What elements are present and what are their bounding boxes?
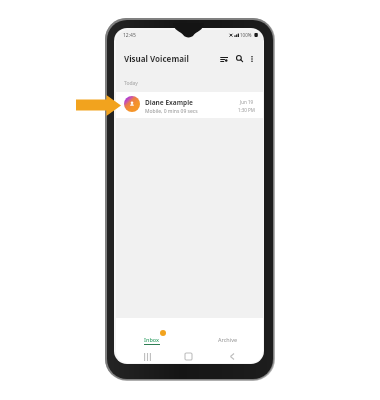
staticText: Diane Example <box>145 98 193 107</box>
button[interactable]: Search <box>231 50 247 66</box>
button[interactable]: Diane Example <box>116 92 263 118</box>
staticText: 1:30 PM <box>238 107 255 113</box>
button[interactable]: Back <box>220 348 244 363</box>
button[interactable]: Home <box>176 348 200 363</box>
button[interactable]: Inbox <box>116 318 190 348</box>
staticText: Visual Voicemail <box>124 53 189 64</box>
button[interactable]: Sort voicemails <box>216 51 232 67</box>
staticText: Archive <box>218 336 238 343</box>
button[interactable]: More options <box>244 51 260 67</box>
button[interactable]: Recent apps <box>135 348 159 363</box>
staticText: Today <box>124 80 138 87</box>
staticText: Jun 19 <box>240 99 254 105</box>
staticText: 12:45 <box>123 32 136 39</box>
staticText: Mobile, 0 mins 09 secs <box>145 108 198 115</box>
staticText: Inbox <box>144 336 160 343</box>
staticText: 100% <box>240 32 252 38</box>
button[interactable]: Archive <box>190 318 263 348</box>
